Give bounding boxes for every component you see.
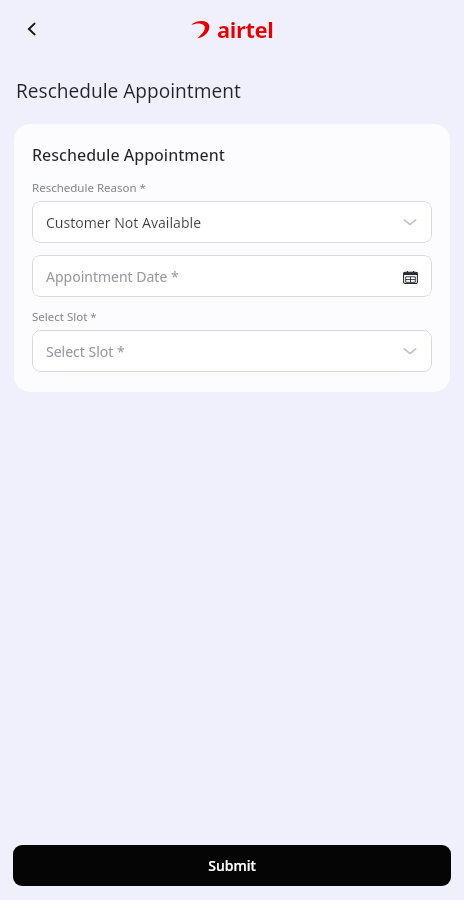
staticText: Reschedule Appointment [32, 144, 225, 166]
staticText: Appointment Date * [46, 267, 179, 286]
staticText: Submit [208, 856, 256, 875]
staticText: airtel [217, 14, 274, 44]
staticText: Reschedule Reason * [32, 180, 146, 196]
staticText: Select Slot * [32, 309, 97, 325]
staticText: Customer Not Available [46, 213, 202, 232]
staticText: Reschedule Appointment [16, 78, 241, 104]
button[interactable]: Appointment Date * [32, 255, 432, 297]
button[interactable]: Customer Not Available [32, 201, 432, 243]
staticText: Select Slot * [46, 342, 125, 361]
button[interactable]: Submit [13, 845, 451, 886]
button[interactable]: Select Slot * [32, 330, 432, 372]
button[interactable]: Back [10, 7, 54, 51]
